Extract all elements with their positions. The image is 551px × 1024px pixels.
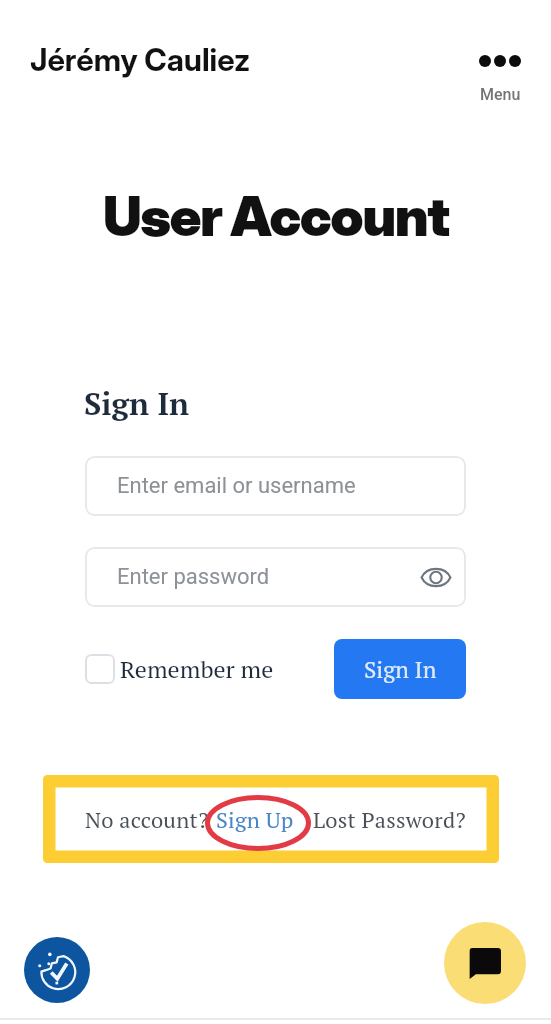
- button[interactable]: No account?: [85, 800, 209, 838]
- staticText: Jérémy Cauliez: [30, 41, 251, 79]
- staticText: User Account: [103, 183, 449, 250]
- staticText: No account?: [85, 805, 209, 834]
- button[interactable]: Menu: [473, 53, 527, 106]
- button[interactable]: Remember me: [85, 645, 274, 693]
- button[interactable]: Enter email or username: [85, 456, 466, 516]
- staticText: Sign Up: [216, 805, 294, 834]
- button[interactable]: Sign Up: [216, 800, 294, 838]
- button[interactable]: Enter password: [85, 547, 466, 607]
- staticText: Enter password: [117, 564, 270, 590]
- staticText: Remember me: [120, 653, 274, 685]
- staticText: Lost Password?: [313, 805, 467, 834]
- staticText: Enter email or username: [117, 473, 356, 499]
- staticText: Sign In: [84, 383, 189, 424]
- staticText: Sign In: [364, 654, 437, 684]
- button[interactable]: Cookie preferences: [24, 937, 90, 1003]
- button[interactable]: Open chat: [444, 922, 526, 1004]
- button[interactable]: Show password: [418, 559, 454, 595]
- button[interactable]: Sign In: [334, 639, 466, 699]
- button[interactable]: Lost Password?: [313, 800, 467, 838]
- staticText: Menu: [480, 85, 521, 104]
